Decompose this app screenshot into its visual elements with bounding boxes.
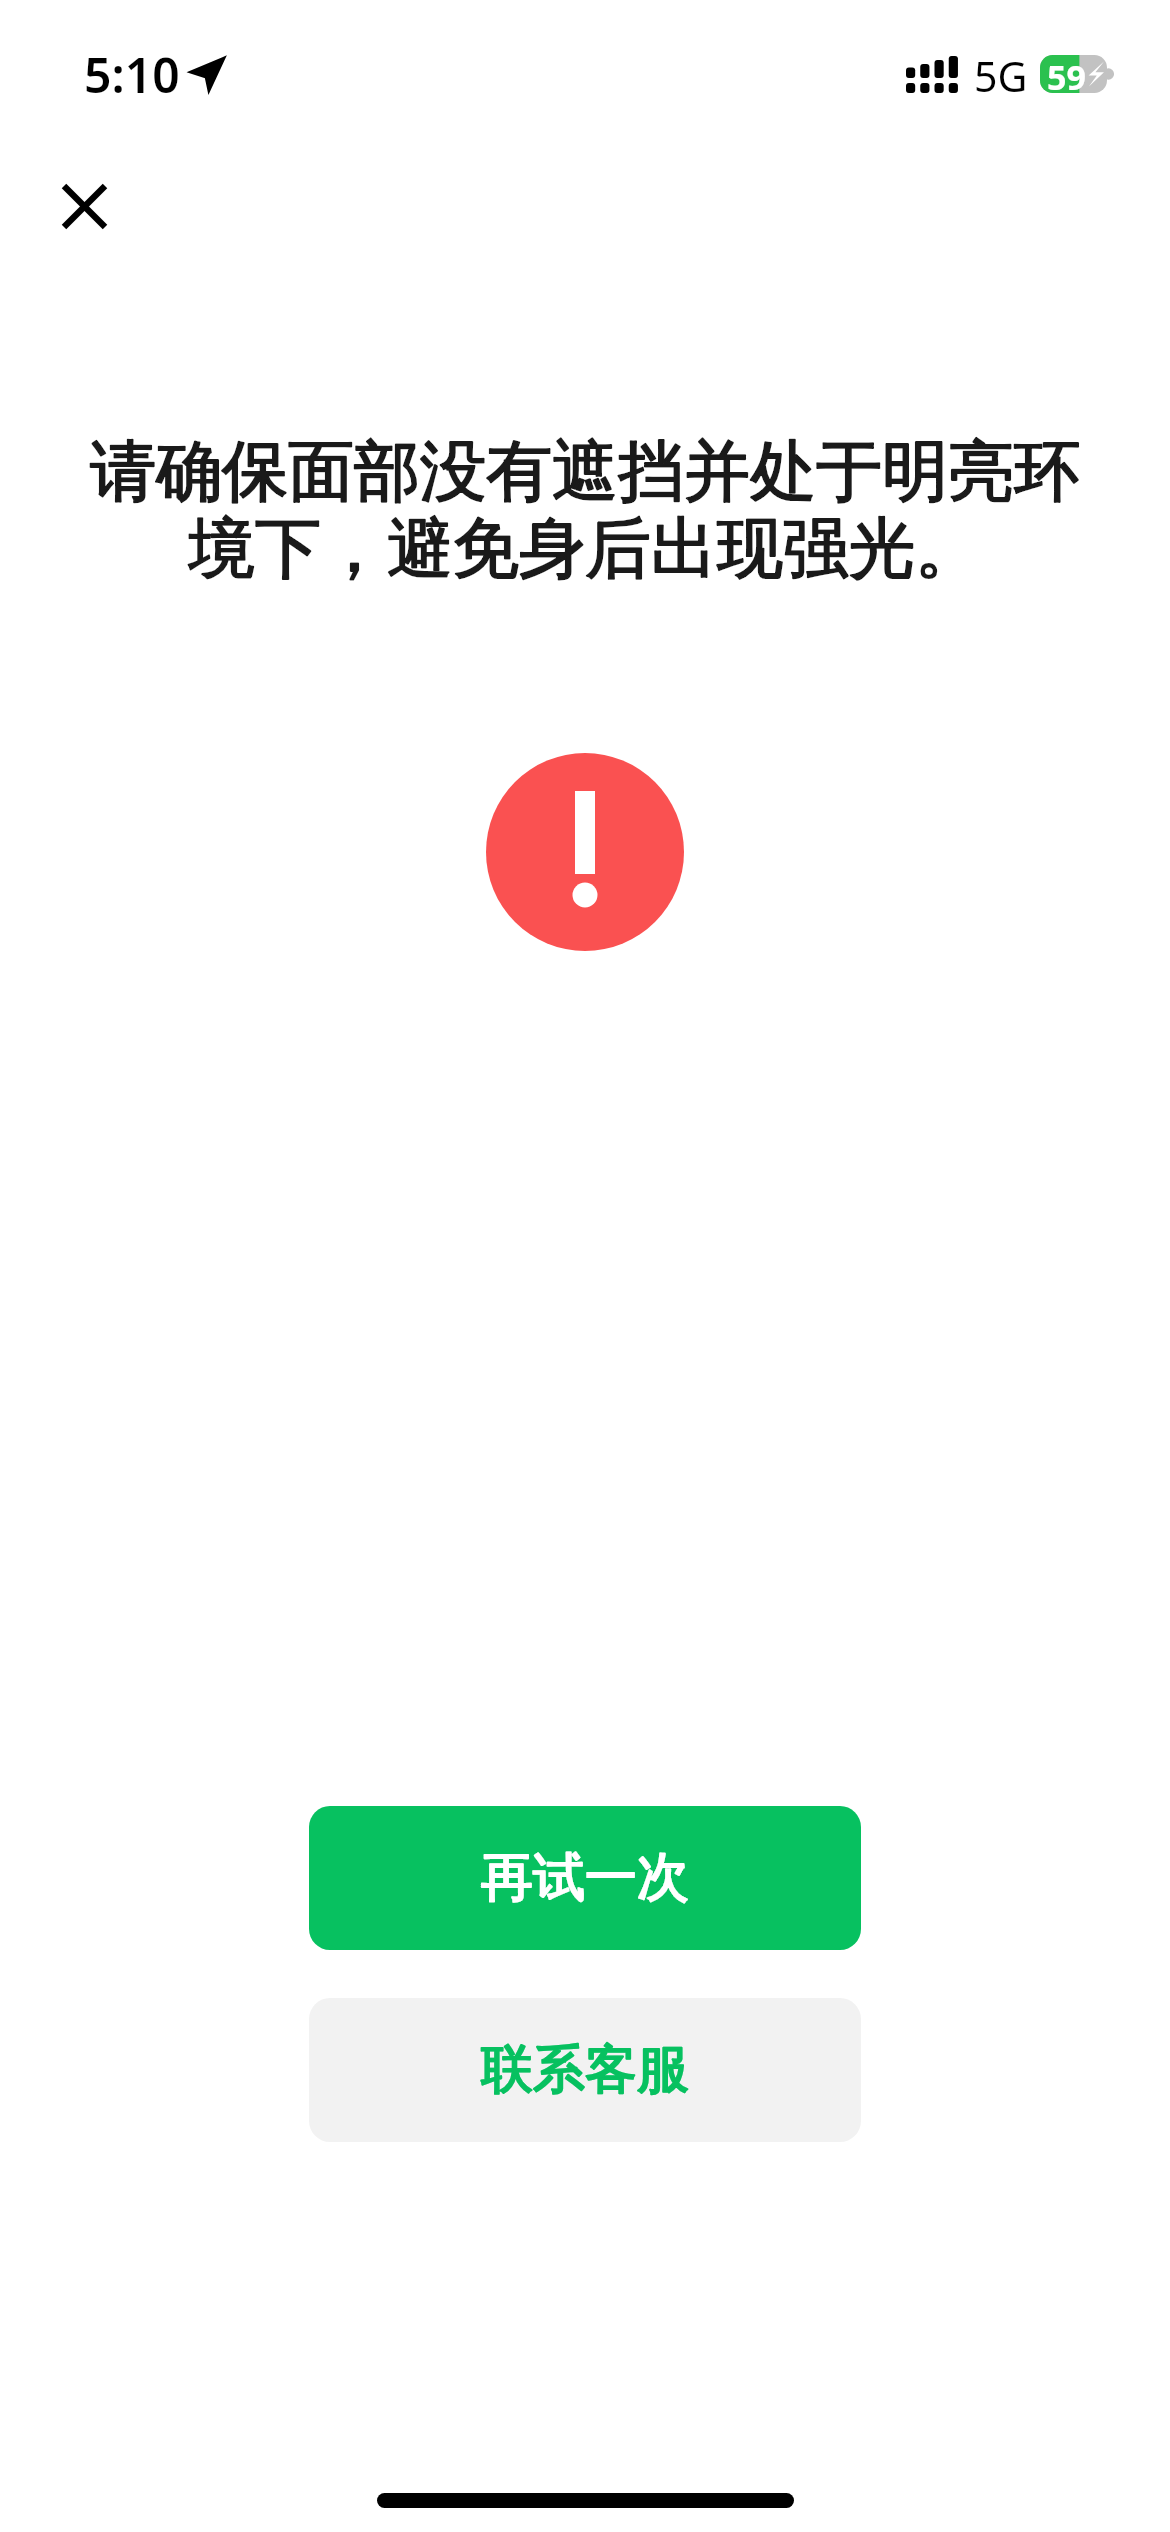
staticText: 59 [1047,54,1086,92]
button[interactable]: Close [24,146,144,266]
staticText: 再试一次 [481,1845,689,1911]
staticText: 联系客服 [481,2037,689,2103]
staticText: 请确保面部没有遮挡并处于明亮环境下，避免身后出现强光。 [72,430,1098,591]
button[interactable]: 再试一次 [309,1806,861,1950]
staticText: 5G [974,48,1028,104]
staticText: 5:10 [84,42,180,107]
staticText: 请确保面部没有遮挡并处于明亮环境下，避免身后出现强光。 [72,430,1098,591]
staticText: 再试一次 [481,1845,689,1911]
button[interactable]: 联系客服 [309,1998,861,2142]
staticText: 联系客服 [481,2037,689,2103]
